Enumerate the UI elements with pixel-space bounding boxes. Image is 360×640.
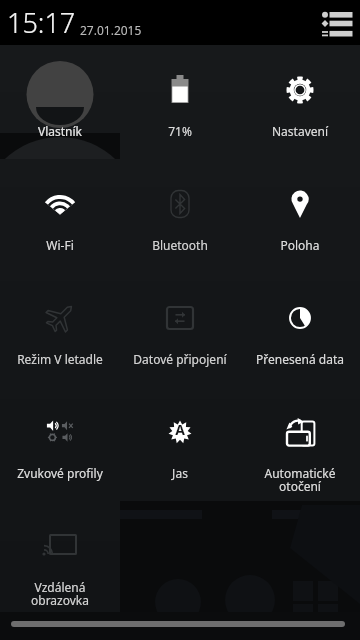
staticText: Vlastník — [0, 123, 120, 139]
button[interactable]: Nastavení — [240, 45, 360, 159]
staticText: 27.01.2015 — [80, 22, 142, 38]
staticText: Vzdálená obrazovka — [0, 579, 120, 609]
button[interactable]: A — [120, 387, 240, 501]
staticText: Jas — [120, 465, 240, 481]
button[interactable]: Wi-Fi — [0, 159, 120, 273]
button[interactable]: 71% — [120, 45, 240, 159]
button[interactable]: Vlastník — [0, 45, 120, 159]
button[interactable]: Datové připojení — [120, 273, 240, 387]
staticText: Poloha — [240, 237, 360, 253]
staticText: Zvukové profily — [0, 465, 120, 481]
button[interactable]: Vzdálená obrazovka — [0, 501, 120, 612]
button[interactable]: Přenesená data — [240, 273, 360, 387]
staticText: Bluetooth — [120, 237, 240, 253]
staticText: Nastavení — [240, 123, 360, 139]
button[interactable]: Automatické otočení — [240, 387, 360, 501]
button[interactable]: Zvukové profily — [0, 387, 120, 501]
staticText: Přenesená data — [240, 351, 360, 367]
button[interactable]: Edit quick settings — [319, 3, 355, 43]
staticText: Datové připojení — [120, 351, 240, 367]
button[interactable]: Poloha — [240, 159, 360, 273]
staticText: Wi-Fi — [0, 237, 120, 253]
staticText: A — [120, 420, 240, 439]
button[interactable]: Režim V letadle — [0, 273, 120, 387]
staticText: Automatické otočení — [240, 465, 360, 495]
staticText: Režim V letadle — [0, 351, 120, 367]
staticText: 15:17 — [7, 4, 76, 41]
button[interactable]: Bluetooth — [120, 159, 240, 273]
staticText: 71% — [120, 123, 240, 139]
